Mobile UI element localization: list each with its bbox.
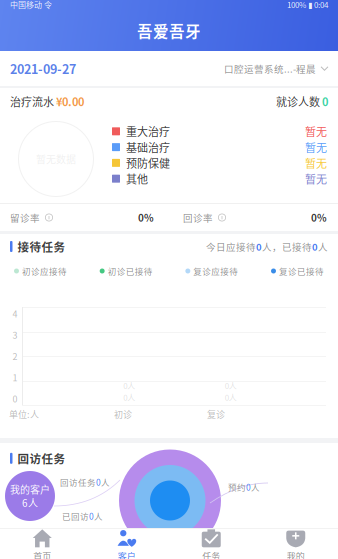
staticText: 0人: [123, 391, 135, 403]
staticText: 口腔运营系统...-程晨: [224, 62, 316, 75]
staticText: 暂无: [305, 155, 327, 171]
staticText: 其他: [126, 171, 148, 187]
staticText: 中国移动 令: [10, 0, 52, 10]
staticText: 0.00: [62, 93, 84, 109]
staticText: 人: [251, 481, 260, 493]
staticText: 6人: [22, 495, 38, 510]
staticText: 初诊应接待: [22, 265, 67, 277]
staticText: 0%: [311, 210, 327, 225]
staticText: 0人: [123, 380, 135, 391]
staticText: 100% ▮ 0:04: [287, 0, 328, 10]
staticText: 我的: [287, 549, 305, 559]
staticText: 0: [312, 240, 318, 253]
staticText: 暂无: [305, 171, 327, 187]
staticText: 就诊人数: [276, 93, 320, 109]
staticText: 人: [94, 510, 103, 522]
staticText: ¥: [54, 93, 62, 109]
staticText: 预约: [228, 481, 246, 493]
staticText: 0: [96, 476, 101, 488]
staticText: 留诊率: [10, 211, 40, 224]
staticText: 复诊应接待: [193, 265, 238, 277]
staticText: 预防保健: [126, 155, 170, 171]
staticText: 人: [101, 476, 110, 488]
staticText: 首页: [33, 549, 51, 559]
staticText: 暂无数据: [36, 152, 76, 166]
button[interactable]: 我的: [253, 525, 338, 559]
staticText: 0: [246, 481, 251, 493]
staticText: 回访任务: [60, 476, 96, 488]
staticText: 已回访: [62, 510, 89, 522]
staticText: 暂无: [305, 123, 327, 139]
staticText: 0: [256, 240, 262, 253]
staticText: 3: [12, 328, 17, 341]
staticText: 客户: [118, 549, 136, 559]
staticText: 2021-09-27: [10, 59, 76, 78]
button[interactable]: 2021-09-27: [10, 59, 76, 78]
staticText: 0人: [225, 380, 237, 391]
staticText: 我的客户: [10, 482, 50, 496]
staticText: 吾爱吾牙: [137, 20, 201, 42]
staticText: 初诊已接待: [108, 265, 153, 277]
staticText: 复诊已接待: [279, 265, 324, 277]
staticText: 任务: [202, 549, 220, 559]
button[interactable]: 客户: [84, 525, 169, 559]
staticText: 1: [12, 371, 17, 384]
staticText: 初诊: [114, 407, 132, 420]
staticText: 2: [12, 349, 17, 362]
button[interactable]: 任务: [169, 525, 253, 559]
staticText: 单位:人: [9, 407, 39, 420]
button[interactable]: 首页: [0, 525, 84, 559]
staticText: 暂无: [305, 139, 327, 155]
staticText: 回访任务: [17, 450, 65, 467]
staticText: 基础治疗: [126, 139, 170, 155]
staticText: 重大治疗: [126, 123, 170, 139]
staticText: 复诊: [207, 407, 225, 420]
staticText: 人: [318, 240, 328, 253]
button[interactable]: 口腔运营系统...-程晨: [224, 62, 328, 75]
staticText: 人，已接待: [262, 240, 312, 253]
staticText: 回诊率: [183, 211, 213, 224]
staticText: 0: [89, 510, 94, 522]
staticText: 今日应接待: [206, 240, 256, 253]
staticText: 0%: [138, 210, 154, 225]
staticText: 0人: [225, 391, 237, 403]
staticText: 0: [320, 93, 328, 109]
staticText: 0: [12, 392, 17, 405]
staticText: 4: [12, 307, 17, 320]
staticText: 接待任务: [17, 238, 65, 255]
staticText: 治疗流水: [10, 93, 54, 109]
